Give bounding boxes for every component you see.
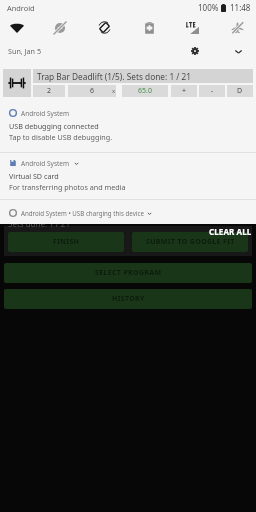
button[interactable]: Battery saver	[128, 16, 170, 39]
button[interactable]: +	[171, 85, 197, 97]
button[interactable]: Do not disturb	[39, 16, 81, 39]
button[interactable]: 2	[33, 85, 65, 97]
button[interactable]: CLEAR ALL	[206, 226, 254, 237]
button[interactable]: FINISH	[8, 232, 124, 252]
staticText: Android System • USB charging this devic…	[21, 209, 144, 217]
staticText: 11:48	[230, 2, 251, 13]
staticText: Sun, Jan 5	[8, 46, 42, 56]
staticText: -	[211, 86, 214, 96]
staticText: Trap Bar Deadlift (1/5). Sets done: 1 / …	[37, 71, 192, 82]
button[interactable]: Workout app	[3, 69, 31, 97]
button[interactable]: Android System	[0, 157, 256, 192]
button[interactable]: 6	[68, 85, 116, 97]
staticText: For transferring photos and media	[9, 182, 126, 192]
staticText: 2	[47, 86, 52, 96]
staticText: Android System	[21, 109, 70, 118]
button[interactable]: Settings	[186, 42, 204, 60]
button[interactable]: Android System • USB charging this devic…	[9, 206, 256, 220]
button[interactable]: Sun, Jan 5	[8, 42, 90, 60]
staticText: FINISH	[53, 237, 80, 247]
button[interactable]: 65.0	[122, 85, 168, 97]
staticText: USB debugging connected	[9, 121, 99, 131]
button[interactable]: Expand	[229, 42, 247, 60]
staticText: Android System	[21, 159, 70, 168]
button[interactable]: Mobile data	[171, 16, 213, 39]
button[interactable]: -	[199, 85, 225, 97]
staticText: x	[112, 87, 116, 95]
button[interactable]: SUBMIT TO GOOGLE FIT	[132, 232, 248, 252]
staticText: Android	[7, 3, 35, 13]
staticText: Tap to disable USB debugging.	[9, 132, 113, 142]
staticText: D	[237, 86, 243, 96]
button[interactable]: Android System	[0, 107, 256, 142]
button[interactable]: SELECT PROGRAM	[4, 263, 252, 283]
staticText: CLEAR ALL	[209, 226, 252, 237]
button[interactable]: D	[227, 85, 253, 97]
button[interactable]: Wi-Fi	[0, 16, 38, 39]
staticText: 100%	[198, 2, 219, 13]
staticText: +	[182, 86, 187, 96]
button[interactable]: Trap Bar Deadlift (1/5). Sets done: 1 / …	[37, 69, 253, 83]
staticText: Virtual SD card	[9, 171, 59, 181]
staticText: 6	[90, 86, 95, 96]
button[interactable]: Airplane mode	[216, 16, 256, 39]
staticText: SUBMIT TO GOOGLE FIT	[146, 237, 235, 247]
staticText: SELECT PROGRAM	[95, 268, 162, 278]
button[interactable]: Auto rotate	[83, 16, 125, 39]
staticText: 65.0	[138, 86, 152, 96]
staticText: Sets done: 1 / 21	[8, 218, 71, 229]
staticText: HISTORY	[112, 294, 145, 304]
